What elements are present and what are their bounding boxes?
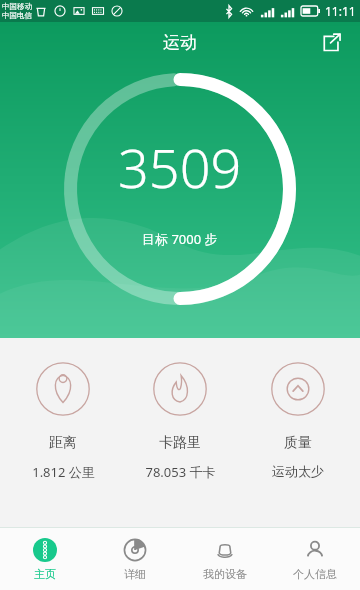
staticText: 中国移动 [2, 2, 32, 11]
staticText: 3509 [118, 130, 242, 204]
staticText: 详细 [124, 567, 146, 581]
button[interactable]: 个人信息 [270, 528, 360, 590]
button[interactable]: 质量 [243, 358, 353, 483]
button[interactable]: 卡路里 [125, 358, 235, 485]
staticText: 卡路里 [159, 434, 201, 452]
staticText: 中国电信 [2, 11, 32, 20]
staticText: 目标 7000 步 [142, 230, 218, 248]
button[interactable]: 距离 [8, 358, 118, 485]
staticText: 质量 [284, 434, 312, 452]
staticText: 78.053 千卡 [145, 463, 216, 481]
button[interactable]: 我的设备 [180, 528, 270, 590]
staticText: 距离 [49, 434, 77, 452]
staticText: 主页 [34, 567, 56, 581]
staticText: 运动太少 [272, 463, 324, 479]
button[interactable]: Share [316, 27, 346, 57]
staticText: 个人信息 [293, 567, 337, 581]
staticText: 我的设备 [203, 567, 247, 581]
staticText: 11:11 [325, 3, 356, 19]
staticText: 运动 [163, 32, 197, 53]
button[interactable]: 主页 [0, 528, 90, 590]
button[interactable]: 详细 [90, 528, 180, 590]
staticText: 1.812 公里 [32, 463, 95, 481]
